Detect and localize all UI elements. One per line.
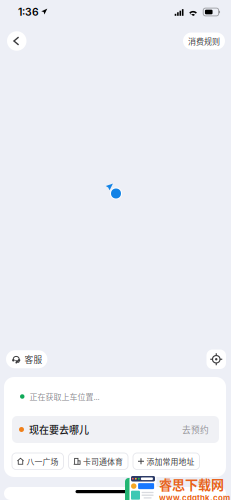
staticText: 现在要去哪儿 xyxy=(29,422,89,437)
staticText: 去预约 xyxy=(182,423,209,436)
staticText: 卡司通体育 xyxy=(83,456,123,467)
button[interactable]: 消费规则 xyxy=(183,32,225,49)
staticText: 八一广场 xyxy=(26,456,58,467)
staticText: 正在获取上车位置... xyxy=(29,391,99,402)
staticText: www.cdgthk.com xyxy=(159,493,230,500)
button[interactable]: 八一广场 xyxy=(12,453,63,469)
staticText: 消费规则 xyxy=(188,35,220,47)
button[interactable]: 现在要去哪儿 xyxy=(12,416,219,443)
staticText: 添加常用地址 xyxy=(146,456,194,467)
staticText: 1:36 xyxy=(18,6,39,18)
button[interactable]: 客服 xyxy=(6,350,47,368)
button[interactable]: 添加常用地址 xyxy=(133,453,199,469)
button[interactable]: 卡司通体育 xyxy=(68,453,128,469)
button[interactable]: 正在获取上车位置... xyxy=(4,377,226,416)
button[interactable]: Back xyxy=(7,31,26,51)
staticText: 睿思下载网 xyxy=(159,474,224,493)
button[interactable]: Center on my location xyxy=(206,349,226,369)
staticText: 客服 xyxy=(24,353,42,365)
